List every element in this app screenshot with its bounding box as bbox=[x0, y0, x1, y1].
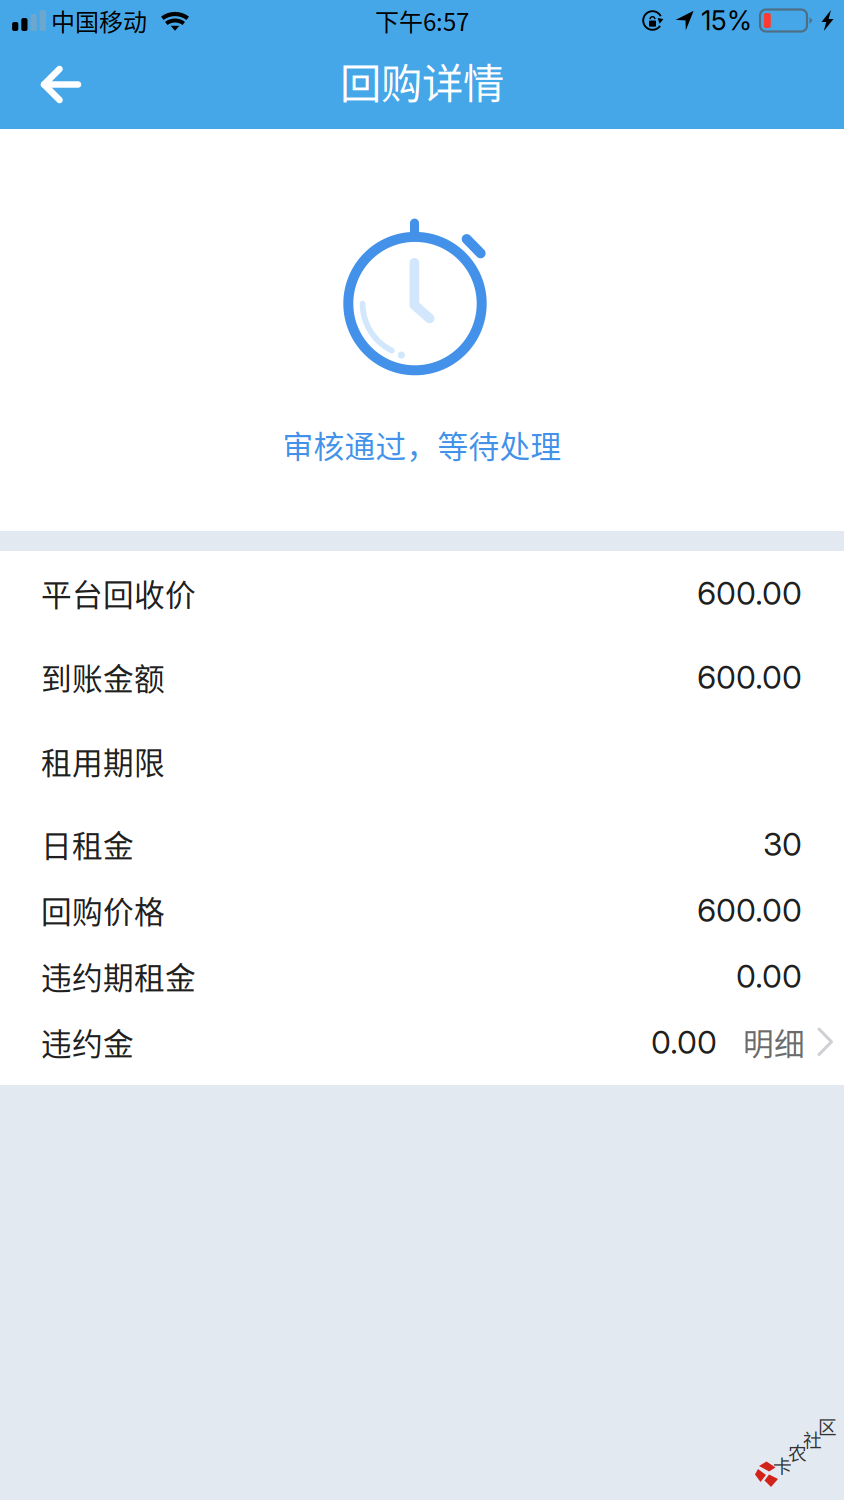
staticText: 租用期限 bbox=[41, 739, 165, 783]
button[interactable]: 返回 bbox=[0, 46, 100, 129]
staticText: 回购价格 bbox=[41, 888, 165, 932]
staticText: 30 bbox=[763, 825, 802, 863]
staticText: 600.00 bbox=[697, 658, 802, 696]
staticText: 审核通过，等待处理 bbox=[282, 422, 561, 467]
staticText: 区 bbox=[818, 1412, 837, 1439]
staticText: 回购详情 bbox=[340, 51, 504, 110]
staticText: 下午6:57 bbox=[375, 3, 469, 38]
staticText: 600.00 bbox=[697, 574, 802, 612]
staticText: 违约期租金 bbox=[41, 954, 196, 998]
staticText: 15% bbox=[701, 4, 752, 37]
staticText: 农 bbox=[788, 1438, 807, 1465]
staticText: 明细 bbox=[743, 1020, 805, 1064]
staticText: 违约金 bbox=[41, 1020, 134, 1064]
staticText: 0.00 bbox=[651, 1023, 717, 1061]
staticText: 卡 bbox=[773, 1451, 792, 1478]
staticText: 日租金 bbox=[41, 822, 134, 866]
staticText: 中国移动 bbox=[51, 3, 147, 38]
staticText: 600.00 bbox=[697, 891, 802, 929]
staticText: 0.00 bbox=[736, 957, 802, 995]
button[interactable]: 违约金 bbox=[0, 1009, 844, 1075]
staticText: 社 bbox=[803, 1425, 822, 1452]
staticText: 到账金额 bbox=[41, 655, 165, 699]
staticText: 平台回收价 bbox=[41, 571, 196, 615]
